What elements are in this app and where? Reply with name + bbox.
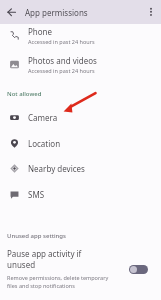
- staticText: SMS: [28, 189, 45, 200]
- button[interactable]: Location: [0, 132, 161, 154]
- staticText: Not allowed: [7, 90, 42, 98]
- button[interactable]: Photos and videos: [0, 51, 161, 77]
- staticText: App permissions: [25, 7, 88, 18]
- staticText: Remove permissions, delete temporary fil…: [7, 274, 116, 290]
- button: Unused app settings: [7, 230, 66, 242]
- button[interactable]: Pause app activity if unused: [0, 0, 161, 300]
- button[interactable]: Back: [3, 3, 21, 21]
- button[interactable]: SMS: [0, 183, 161, 205]
- staticText: Phone: [28, 26, 53, 37]
- staticText: Accessed in past 24 hours: [28, 38, 95, 45]
- staticText: Unused app settings: [7, 232, 66, 240]
- button[interactable]: Pause app activity toggle: [129, 265, 148, 274]
- staticText: Photos and videos: [28, 55, 97, 66]
- button[interactable]: Camera: [0, 106, 161, 128]
- staticText: Nearby devices: [28, 163, 85, 174]
- button: Not allowed: [7, 88, 42, 100]
- staticText: Camera: [28, 112, 58, 123]
- button[interactable]: Phone: [0, 22, 161, 48]
- button[interactable]: Nearby devices: [0, 157, 161, 179]
- staticText: Location: [28, 138, 61, 149]
- button[interactable]: More options: [144, 5, 158, 19]
- staticText: Pause app activity if unused: [7, 248, 89, 270]
- staticText: Accessed in past 24 hours: [28, 67, 95, 74]
